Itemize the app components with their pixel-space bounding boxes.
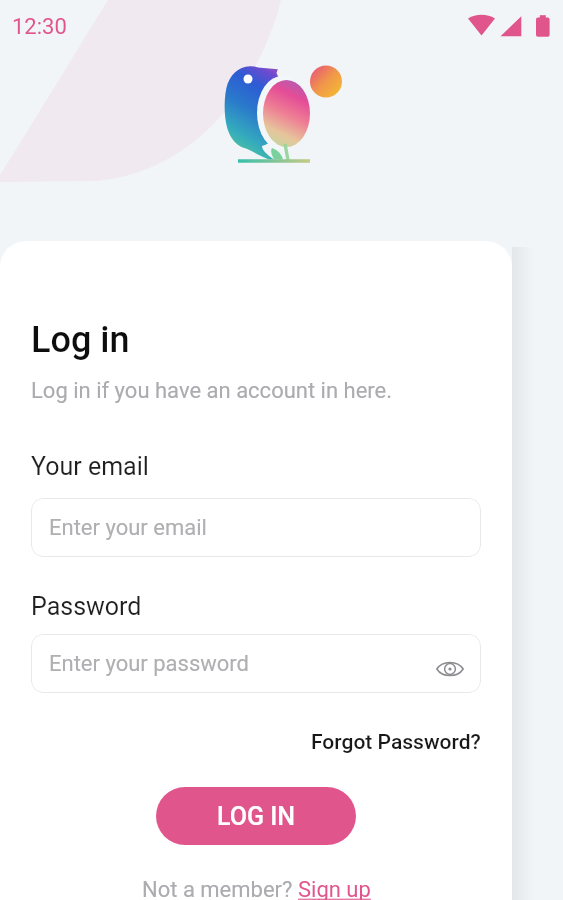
button[interactable]: Forgot Password? bbox=[311, 730, 481, 755]
button[interactable]: Sign up bbox=[298, 877, 371, 900]
staticText: Not a member? bbox=[142, 877, 298, 900]
staticText: Enter your email bbox=[49, 515, 207, 541]
button[interactable]: LOG IN bbox=[156, 787, 356, 845]
staticText: 12:30 bbox=[12, 14, 67, 40]
staticText: Log in bbox=[31, 319, 130, 361]
staticText: Your email bbox=[31, 452, 149, 481]
staticText: Password bbox=[31, 592, 142, 621]
staticText: LOG IN bbox=[217, 802, 296, 831]
button[interactable]: Enter your email bbox=[31, 498, 481, 557]
button[interactable]: Show password bbox=[433, 652, 467, 686]
staticText: Sign up bbox=[298, 877, 371, 900]
staticText: Forgot Password? bbox=[311, 730, 481, 755]
staticText: Log in if you have an account in here. bbox=[31, 378, 393, 404]
button[interactable]: Enter your password bbox=[31, 634, 481, 693]
staticText: Enter your password bbox=[49, 651, 250, 677]
